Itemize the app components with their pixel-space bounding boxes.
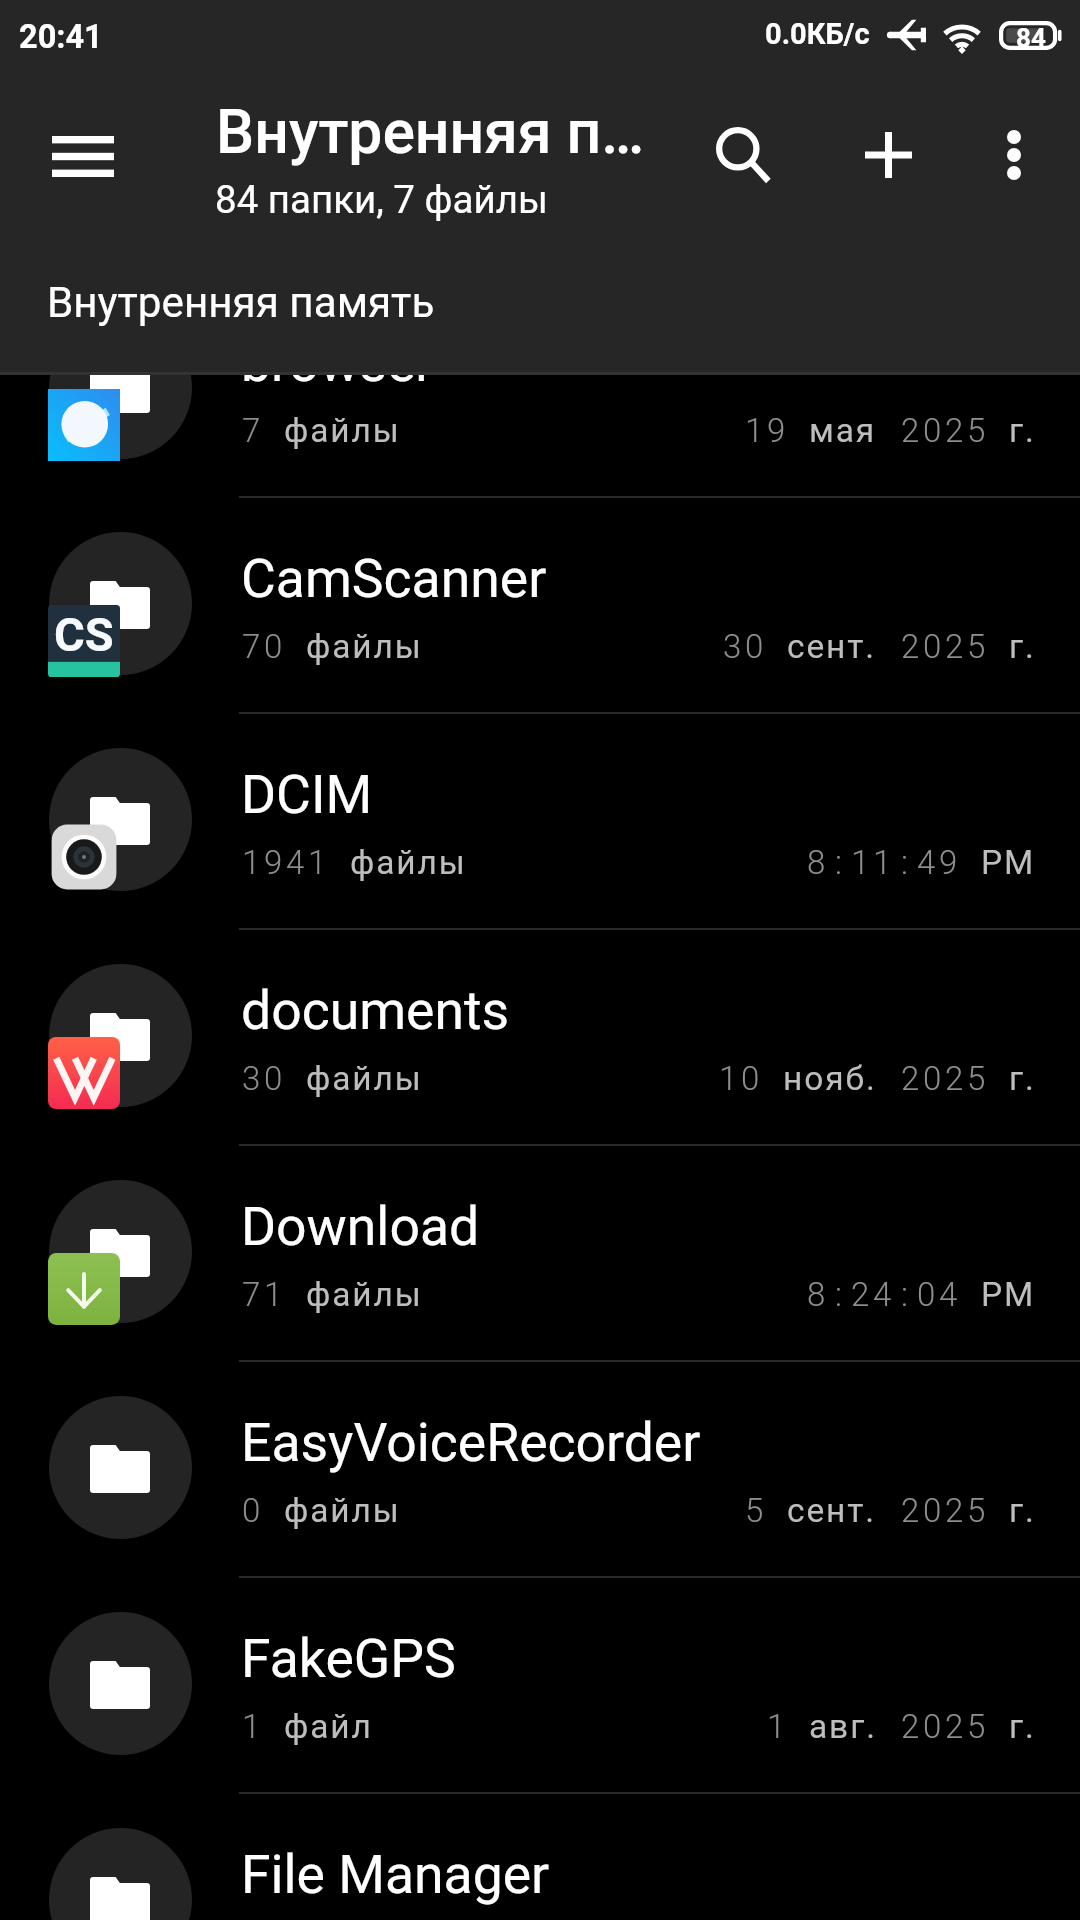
staticText: 0 <box>242 1491 261 1530</box>
staticText: г. <box>1009 411 1036 450</box>
staticText: 5 <box>967 1059 986 1098</box>
staticText: 0 <box>917 1275 936 1314</box>
staticText: 0 <box>923 1707 942 1746</box>
staticText: CS <box>54 607 114 662</box>
staticText: 84 папки, 7 файлы <box>215 177 548 222</box>
staticText: 4 <box>286 843 305 882</box>
staticText: 5 <box>967 1491 986 1530</box>
staticText: 1 <box>719 1059 738 1098</box>
staticText: 5 <box>967 627 986 666</box>
staticText: 4 <box>917 843 936 882</box>
staticText: Download <box>241 1195 480 1258</box>
staticText: 0 <box>264 1059 283 1098</box>
button[interactable]: documents <box>0 928 1080 1144</box>
button[interactable]: CS <box>0 496 1080 712</box>
staticText: файлы <box>306 1275 423 1314</box>
staticText: авг. <box>809 1707 877 1746</box>
staticText: 2 <box>901 1491 920 1530</box>
staticText: 4 <box>939 1275 958 1314</box>
staticText: 2 <box>901 627 920 666</box>
staticText: 9 <box>264 843 283 882</box>
staticText: 2 <box>945 411 964 450</box>
button[interactable]: DCIM <box>0 712 1080 928</box>
staticText: файлы <box>350 843 467 882</box>
staticText: : <box>835 843 842 882</box>
staticText: 84 <box>1016 23 1046 53</box>
staticText: 2 <box>945 1707 964 1746</box>
staticText: : <box>835 1275 842 1314</box>
staticText: г. <box>1009 1059 1036 1098</box>
button[interactable]: Download <box>0 1144 1080 1360</box>
staticText: browser <box>241 331 434 394</box>
staticText: 0 <box>923 1059 942 1098</box>
staticText: 20:41 <box>19 18 103 56</box>
staticText: CamScanner <box>241 547 547 610</box>
staticText: 1 <box>745 411 764 450</box>
staticText: 9 <box>767 411 786 450</box>
staticText: файл <box>284 1707 373 1746</box>
staticText: PM <box>981 843 1036 882</box>
staticText: сент. <box>787 1491 877 1530</box>
staticText: 7 <box>242 411 261 450</box>
staticText: PM <box>981 1275 1036 1314</box>
staticText: нояб. <box>783 1059 877 1098</box>
button[interactable]: File Manager <box>0 1792 1080 1920</box>
staticText: файлы <box>284 1491 401 1530</box>
staticText: 9 <box>939 843 958 882</box>
staticText: 0 <box>923 627 942 666</box>
staticText: 1 <box>308 843 327 882</box>
staticText: 1 <box>873 843 892 882</box>
staticText: 4 <box>873 1275 892 1314</box>
staticText: 1 <box>264 1275 283 1314</box>
staticText: г. <box>1009 627 1036 666</box>
staticText: 5 <box>967 411 986 450</box>
staticText: Внутренняя п… <box>216 97 644 168</box>
staticText: EasyVoiceRecorder <box>241 1411 701 1474</box>
staticText: файлы <box>306 1059 423 1098</box>
staticText: 7 <box>242 1275 261 1314</box>
staticText: documents <box>241 979 510 1042</box>
staticText: 0 <box>923 1491 942 1530</box>
staticText: сент. <box>787 627 877 666</box>
button[interactable]: Add new <box>832 99 944 211</box>
staticText: 7 <box>242 627 261 666</box>
staticText: 0 <box>923 411 942 450</box>
staticText: 8 <box>807 1275 826 1314</box>
staticText: 2 <box>851 1275 870 1314</box>
button[interactable]: EasyVoiceRecorder <box>0 1360 1080 1576</box>
staticText: 5 <box>745 1491 764 1530</box>
staticText: файлы <box>306 627 423 666</box>
staticText: DCIM <box>241 763 373 826</box>
button[interactable]: Внутренняя память <box>47 278 435 327</box>
staticText: 5 <box>967 1707 986 1746</box>
staticText: 2 <box>901 411 920 450</box>
staticText: 8 <box>807 843 826 882</box>
staticText: файлы <box>284 411 401 450</box>
staticText: Внутренняя память <box>47 278 435 327</box>
staticText: FakeGPS <box>241 1627 456 1690</box>
staticText: : <box>901 1275 908 1314</box>
button[interactable]: FakeGPS <box>0 1576 1080 1792</box>
button[interactable]: Open navigation menu <box>25 98 141 214</box>
staticText: 1 <box>242 843 261 882</box>
staticText: 0 <box>745 627 764 666</box>
staticText: 1 <box>851 843 870 882</box>
staticText: 3 <box>723 627 742 666</box>
staticText: 1 <box>242 1707 261 1746</box>
staticText: 1 <box>767 1707 786 1746</box>
button[interactable]: More options <box>958 99 1070 211</box>
staticText: г. <box>1009 1707 1036 1746</box>
staticText: г. <box>1009 1491 1036 1530</box>
staticText: 3 <box>242 1059 261 1098</box>
staticText: 2 <box>945 1491 964 1530</box>
staticText: File Manager <box>241 1843 550 1906</box>
staticText: 0 <box>264 627 283 666</box>
button[interactable]: Search <box>687 98 799 210</box>
staticText: 2 <box>945 1059 964 1098</box>
staticText: мая <box>809 411 877 450</box>
staticText: : <box>901 843 908 882</box>
staticText: 2 <box>901 1059 920 1098</box>
staticText: 0 <box>741 1059 760 1098</box>
staticText: 2 <box>945 627 964 666</box>
button[interactable]: browser <box>0 280 1080 496</box>
